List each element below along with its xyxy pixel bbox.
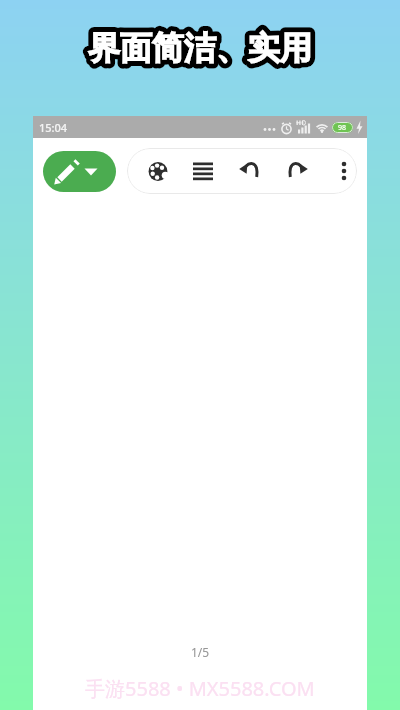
staticText: 手游5588 • MX5588.COM xyxy=(85,675,315,702)
staticText: 15:04 xyxy=(39,120,68,135)
staticText: 1/5 xyxy=(191,644,210,660)
button[interactable] xyxy=(331,158,357,184)
button[interactable] xyxy=(127,148,357,194)
button[interactable] xyxy=(43,151,116,192)
staticText: 98 xyxy=(338,123,347,133)
staticText: 界面简洁、实用 xyxy=(88,28,312,68)
staticText: 界面简洁、实用 xyxy=(88,28,312,68)
